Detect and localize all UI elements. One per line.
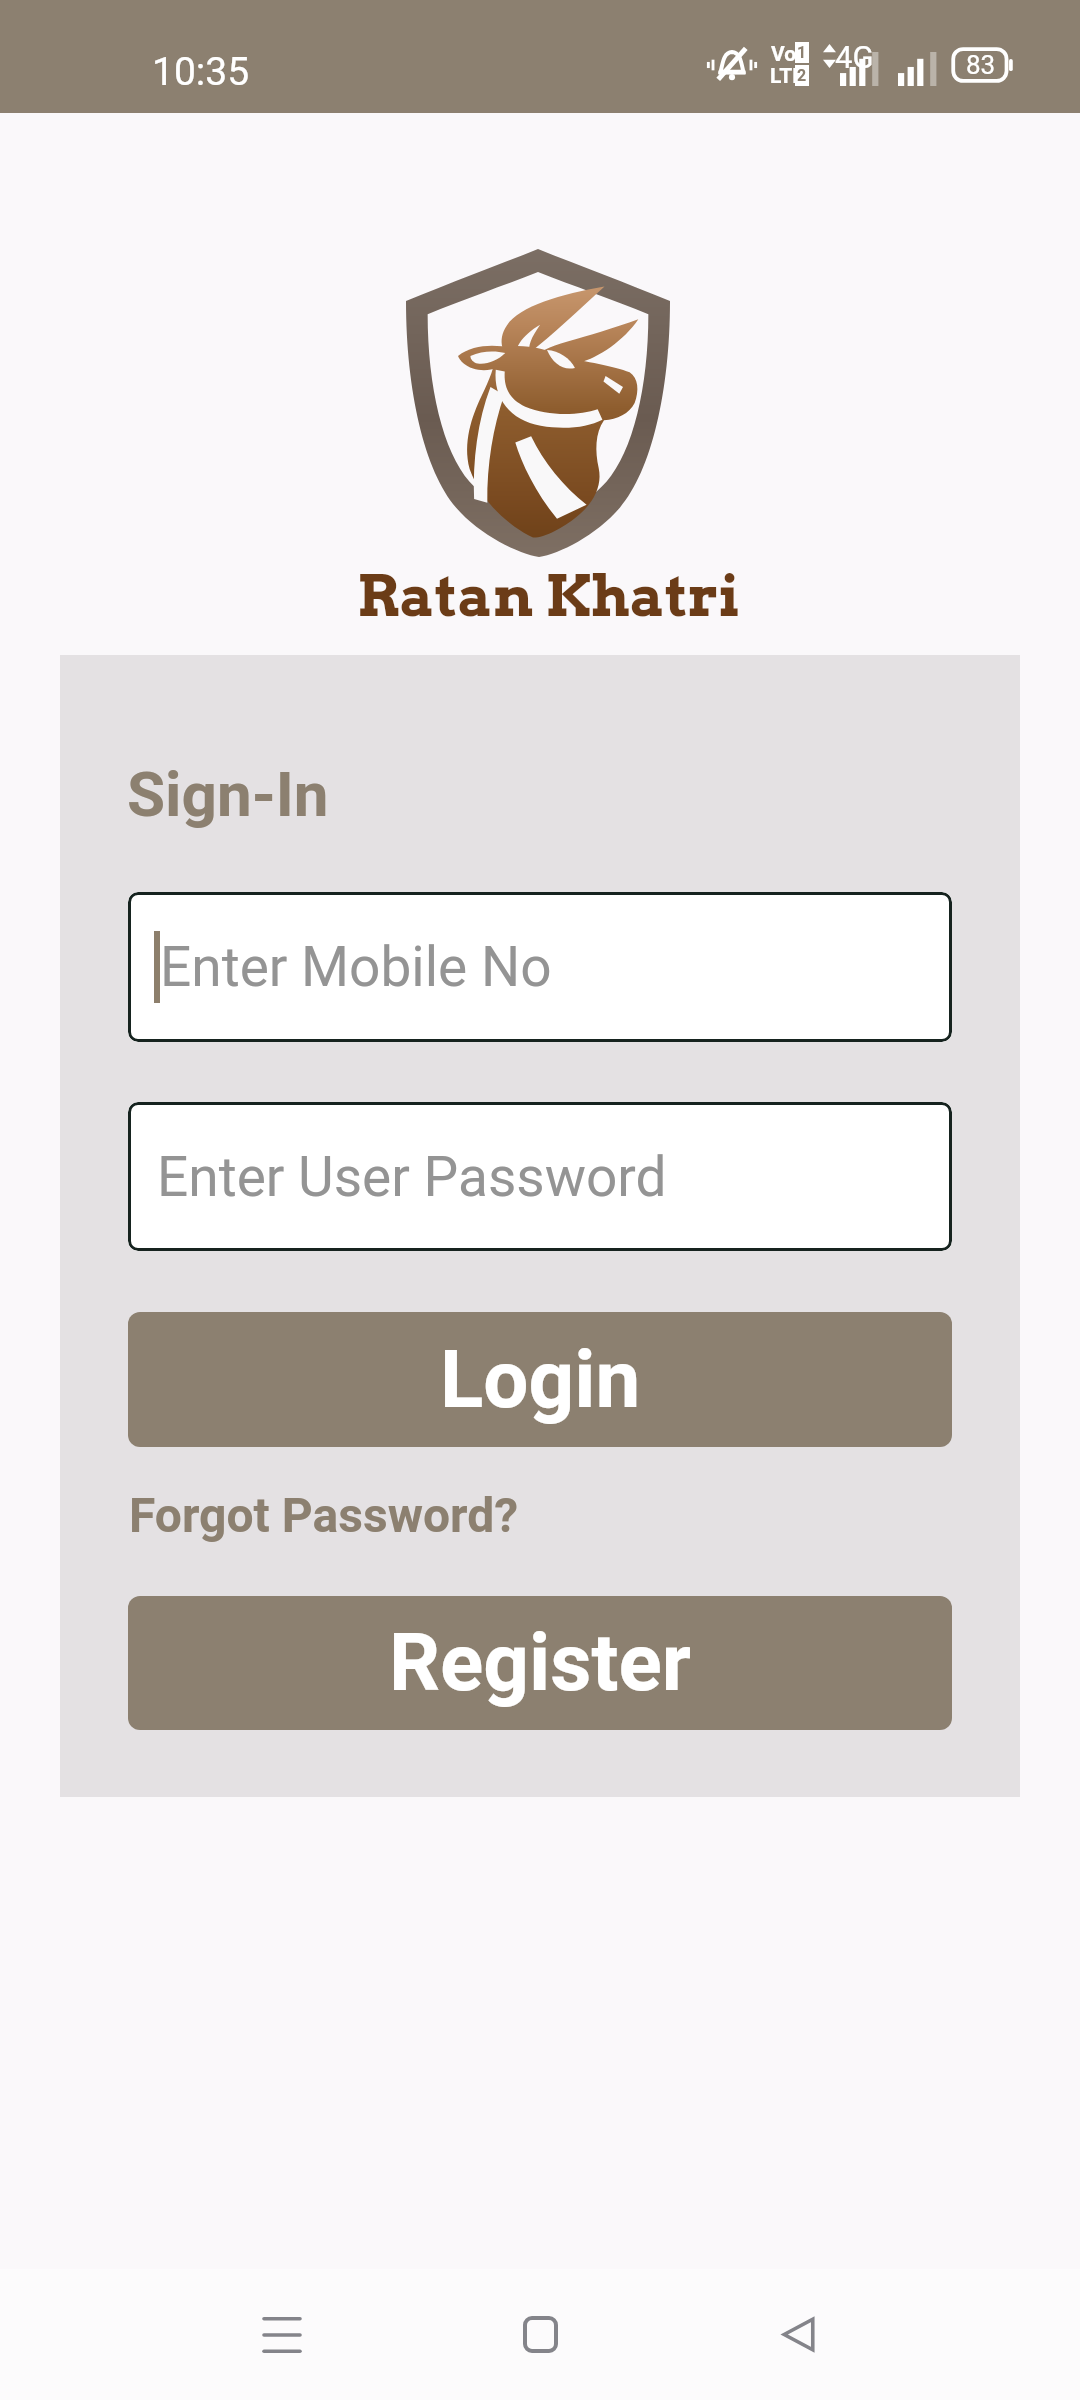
staticText: Register [389,1616,691,1710]
staticText: 2 [797,66,807,85]
staticText: Login [440,1333,641,1427]
staticText: 4G [835,39,874,75]
button[interactable]: Forgot Password? [129,1487,519,1543]
staticText: Enter User Password [157,1145,667,1209]
button[interactable]: Home [450,2269,630,2400]
button[interactable]: Recent apps [192,2269,372,2400]
staticText: Ratan Khatri [357,561,741,630]
button[interactable]: Login [128,1312,952,1447]
staticText: 1 [797,43,807,62]
staticText: 83 [966,50,996,80]
staticText: 10:35 [152,49,250,95]
button[interactable]: Register [128,1596,952,1730]
staticText: Sign-In [127,758,329,831]
button[interactable]: Back [708,2269,888,2400]
staticText: LTE [770,64,805,89]
button[interactable]: Enter Mobile No [128,892,952,1042]
staticText: Enter Mobile No [160,935,552,999]
staticText: Vo [771,42,797,67]
button[interactable]: Enter User Password [128,1102,952,1251]
